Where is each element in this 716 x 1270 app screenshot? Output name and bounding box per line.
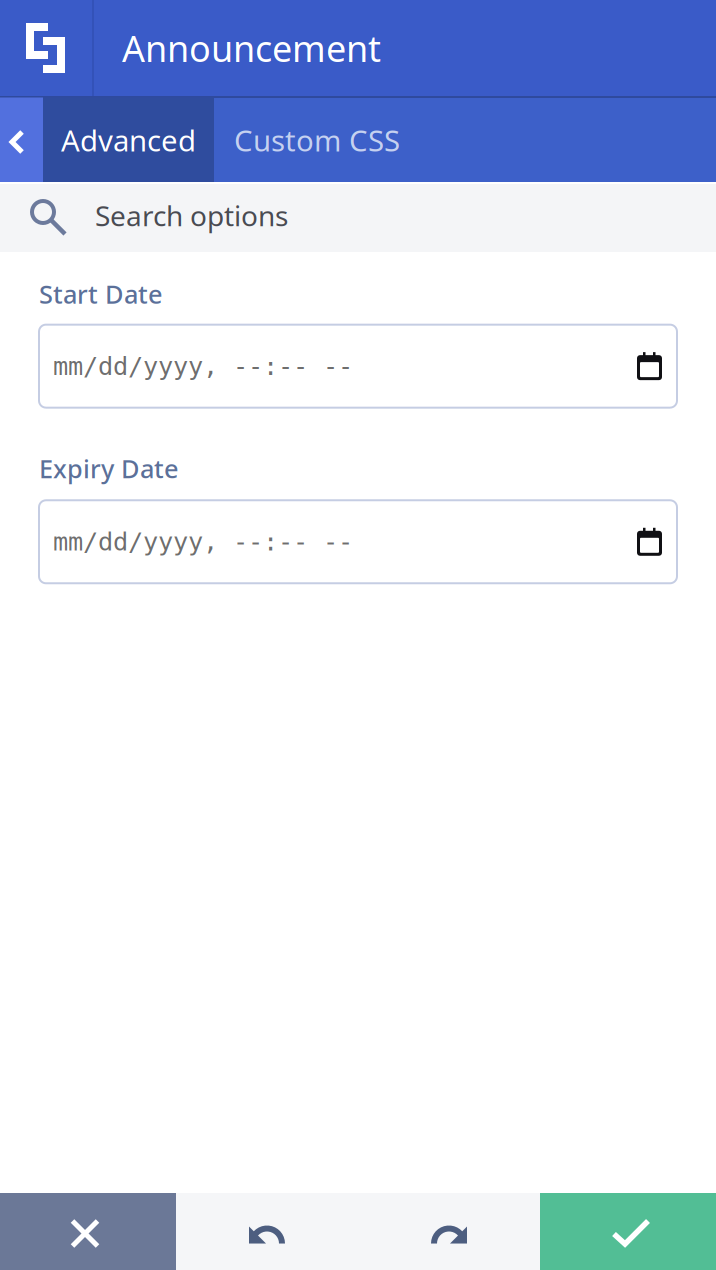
button[interactable]: Save — [540, 1193, 716, 1270]
staticText: Custom CSS — [234, 120, 400, 159]
staticText: Announcement — [122, 24, 381, 72]
button[interactable]: mm/dd/yyyy, --:-- -- — [39, 325, 677, 408]
button[interactable]: Redo — [358, 1193, 540, 1270]
button[interactable]: Back — [0, 97, 43, 182]
staticText: mm/dd/yyyy, --:-- -- — [53, 352, 353, 381]
staticText: mm/dd/yyyy, --:-- -- — [53, 527, 353, 556]
staticText: Expiry Date — [39, 452, 179, 485]
button[interactable]: Advanced — [43, 97, 214, 182]
button[interactable]: Search options — [0, 184, 716, 252]
staticText: Start Date — [39, 277, 163, 311]
button[interactable]: Home — [0, 0, 92, 96]
button[interactable]: mm/dd/yyyy, --:-- -- — [39, 500, 677, 583]
staticText: Search options — [95, 197, 288, 234]
button[interactable]: Undo — [176, 1193, 358, 1270]
staticText: Advanced — [61, 120, 196, 159]
button[interactable]: Cancel — [0, 1193, 176, 1270]
button[interactable]: Custom CSS — [214, 97, 410, 182]
